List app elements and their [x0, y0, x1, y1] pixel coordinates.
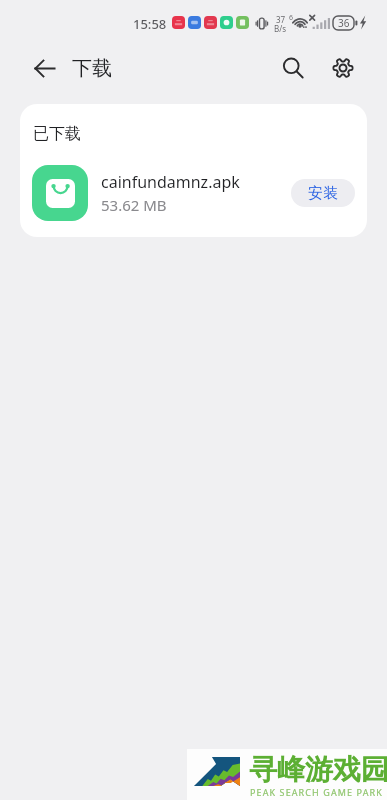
- staticText: 15:58: [133, 15, 167, 33]
- button[interactable]: 安装: [291, 179, 355, 207]
- staticText: 6: [289, 13, 294, 23]
- staticText: 下载: [72, 56, 112, 81]
- staticText: 已下载: [33, 124, 81, 144]
- button[interactable]: cainfundamnz.apk: [20, 159, 367, 227]
- button[interactable]: Search: [270, 45, 316, 91]
- staticText: 寻峰游戏园: [249, 752, 387, 787]
- staticText: 36: [338, 16, 350, 30]
- button[interactable]: Back: [20, 44, 68, 92]
- staticText: 37: [276, 14, 286, 25]
- button[interactable]: Settings: [320, 45, 366, 91]
- staticText: PEAK SEARCH GAME PARK: [250, 786, 383, 798]
- staticText: B/s: [274, 23, 287, 34]
- staticText: 53.62 MB: [101, 195, 167, 215]
- staticText: cainfundamnz.apk: [101, 171, 240, 193]
- staticText: 安装: [308, 184, 338, 203]
